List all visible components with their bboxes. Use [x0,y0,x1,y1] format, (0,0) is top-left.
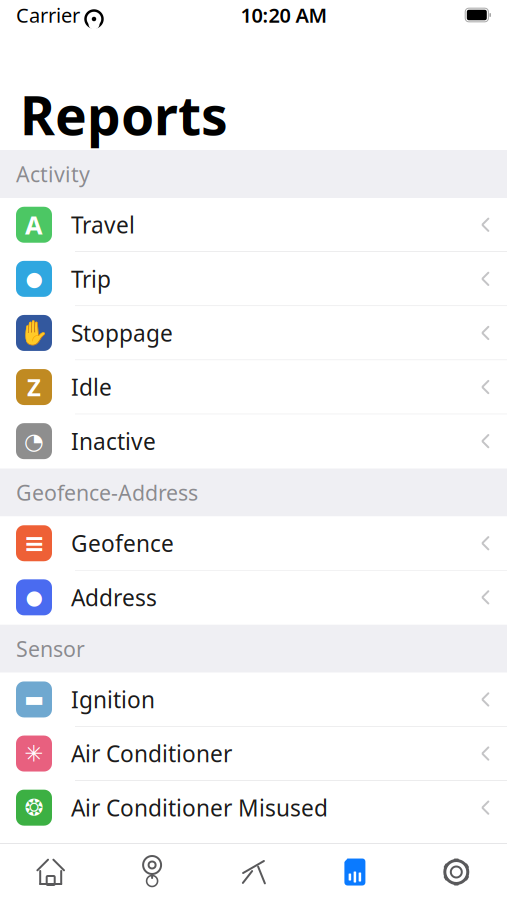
staticText: Stoppage [71,318,173,348]
staticText: Geofence-Address [16,478,198,507]
staticText: Idle [71,372,112,402]
staticText: Inactive [71,426,156,456]
staticText: ● [25,267,42,290]
staticText: ▬ [24,687,44,711]
staticText: Geofence [71,528,174,558]
staticText: Air Conditioner Misused [71,793,328,823]
button[interactable]: A [0,198,507,252]
staticText: ✳ [24,741,43,766]
staticText: ◔ [24,428,44,454]
button[interactable]: ◔ [0,414,507,468]
staticText: ≡ [23,529,44,558]
button[interactable]: ✋ [0,306,507,360]
button[interactable]: ● [0,835,507,889]
button[interactable]: Navigate [203,844,304,900]
button[interactable]: ❂ [0,781,507,835]
button[interactable]: ▬ [0,673,507,727]
button[interactable]: ≡ [0,516,507,571]
staticText: Activity [16,160,90,188]
button[interactable]: Settings [406,844,507,900]
button[interactable]: ✳ [0,727,507,781]
staticText: ❂ [24,795,43,820]
staticText: 10:20 AM [241,2,328,28]
staticText: Z [27,371,41,403]
staticText: Address [71,582,157,612]
button[interactable]: Places [101,844,203,900]
staticText: Carrier [16,2,80,28]
staticText: Reports [20,79,228,150]
staticText: Air Conditioner [71,738,232,769]
button[interactable]: Z [0,360,507,414]
button[interactable]: Reports [304,844,406,900]
staticText: Sensor [16,634,85,663]
staticText: A [25,208,43,241]
staticText: ● [25,850,42,873]
staticText: ● [25,586,42,609]
button[interactable]: Home [0,844,101,900]
staticText: Ignition [71,684,155,714]
button[interactable]: ● [0,252,507,306]
button[interactable]: ● [0,571,507,625]
staticText: Trip [71,264,111,294]
staticText: ✋ [19,319,49,347]
staticText: Travel [71,210,135,240]
